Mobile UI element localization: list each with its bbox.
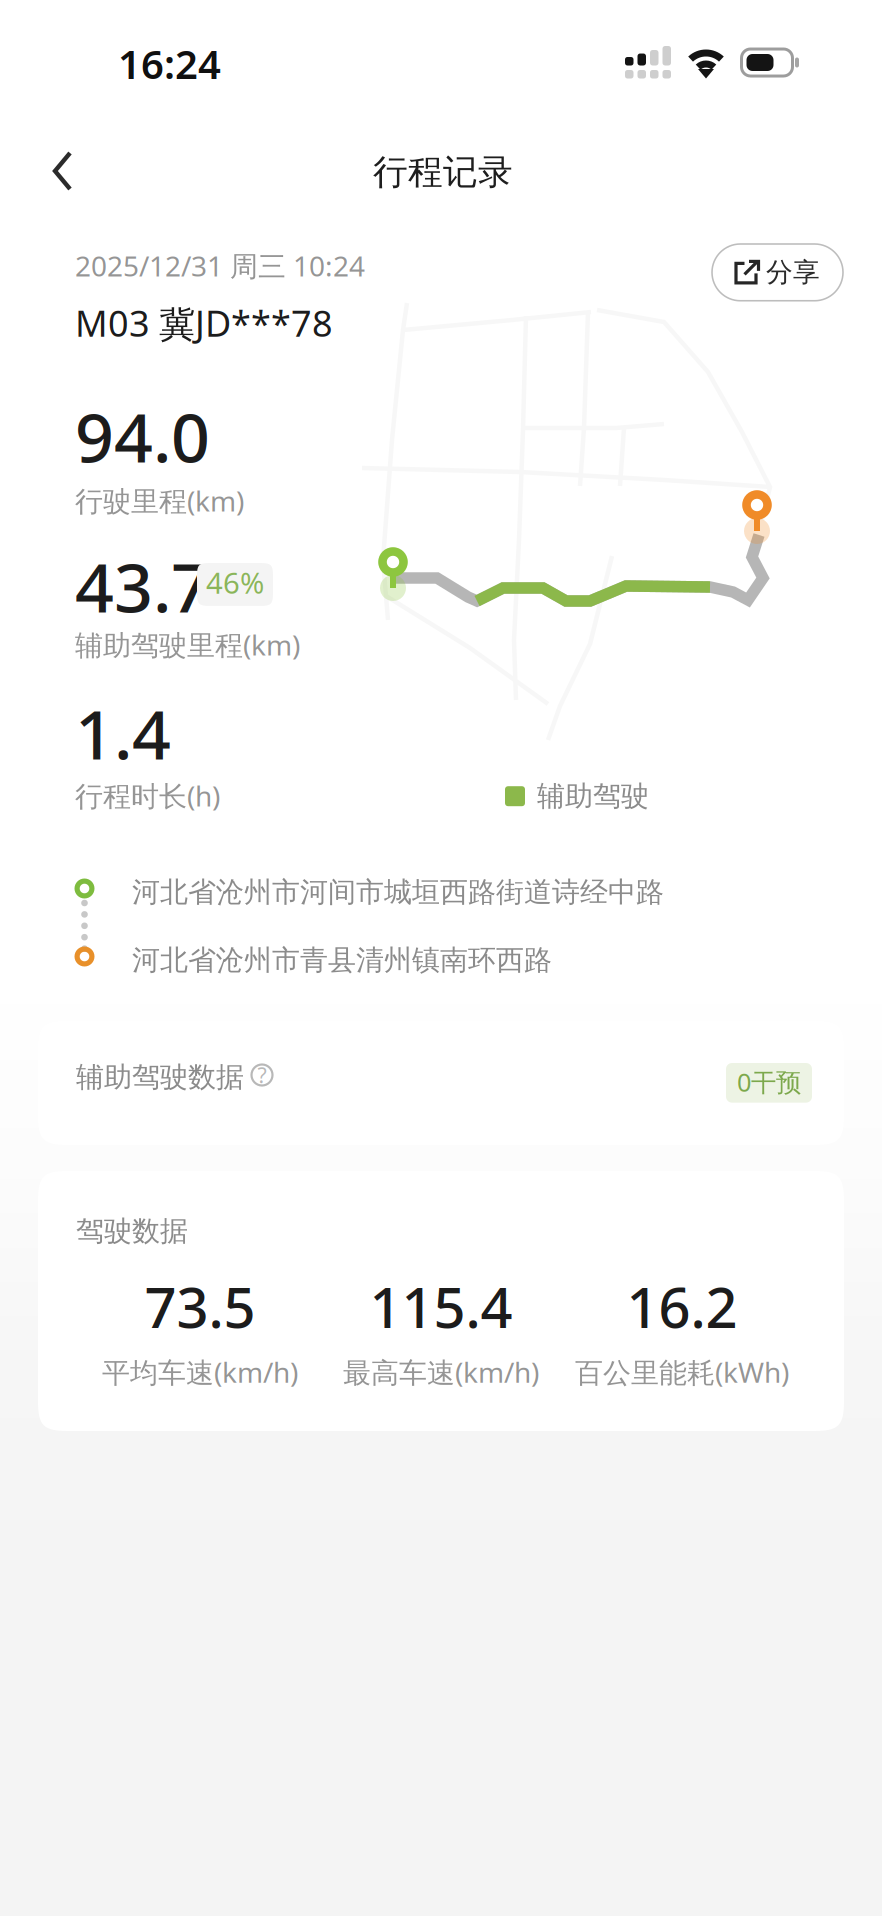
staticText: 辅助驾驶 bbox=[537, 779, 649, 813]
staticText: 16.2 bbox=[626, 1269, 737, 1343]
staticText: 73.5 bbox=[144, 1269, 255, 1343]
button[interactable]: 分享 bbox=[712, 244, 843, 301]
staticText: 最高车速(km/h) bbox=[343, 1353, 539, 1391]
button[interactable]: 返回 bbox=[0, 131, 110, 211]
staticText: 河北省沧州市河间市城垣西路街道诗经中路 bbox=[132, 875, 664, 909]
staticText: 河北省沧州市青县清州镇南环西路 bbox=[132, 943, 552, 977]
staticText: 辅助驾驶里程(km) bbox=[75, 626, 300, 663]
staticText: 1.4 bbox=[75, 688, 171, 778]
staticText: 46% bbox=[206, 563, 264, 602]
staticText: 16:24 bbox=[118, 37, 221, 90]
staticText: 分享 bbox=[766, 256, 820, 289]
staticText: 行程时长(h) bbox=[75, 777, 220, 814]
staticText: 行程记录 bbox=[373, 151, 513, 194]
staticText: 115.4 bbox=[369, 1269, 512, 1343]
staticText: 43.7 bbox=[75, 541, 210, 631]
staticText: 2025/12/31 周三 10:24 bbox=[75, 247, 365, 284]
staticText: 0干预 bbox=[737, 1065, 801, 1099]
staticText: 辅助驾驶数据 bbox=[76, 1060, 244, 1094]
staticText: 行驶里程(km) bbox=[75, 482, 244, 519]
staticText: 百公里能耗(kWh) bbox=[575, 1353, 789, 1391]
staticText: 驾驶数据 bbox=[76, 1214, 188, 1248]
staticText: ? bbox=[257, 1061, 266, 1089]
staticText: M03 冀JD***78 bbox=[75, 299, 333, 347]
staticText: 94.0 bbox=[75, 391, 210, 481]
staticText: 平均车速(km/h) bbox=[102, 1353, 298, 1391]
